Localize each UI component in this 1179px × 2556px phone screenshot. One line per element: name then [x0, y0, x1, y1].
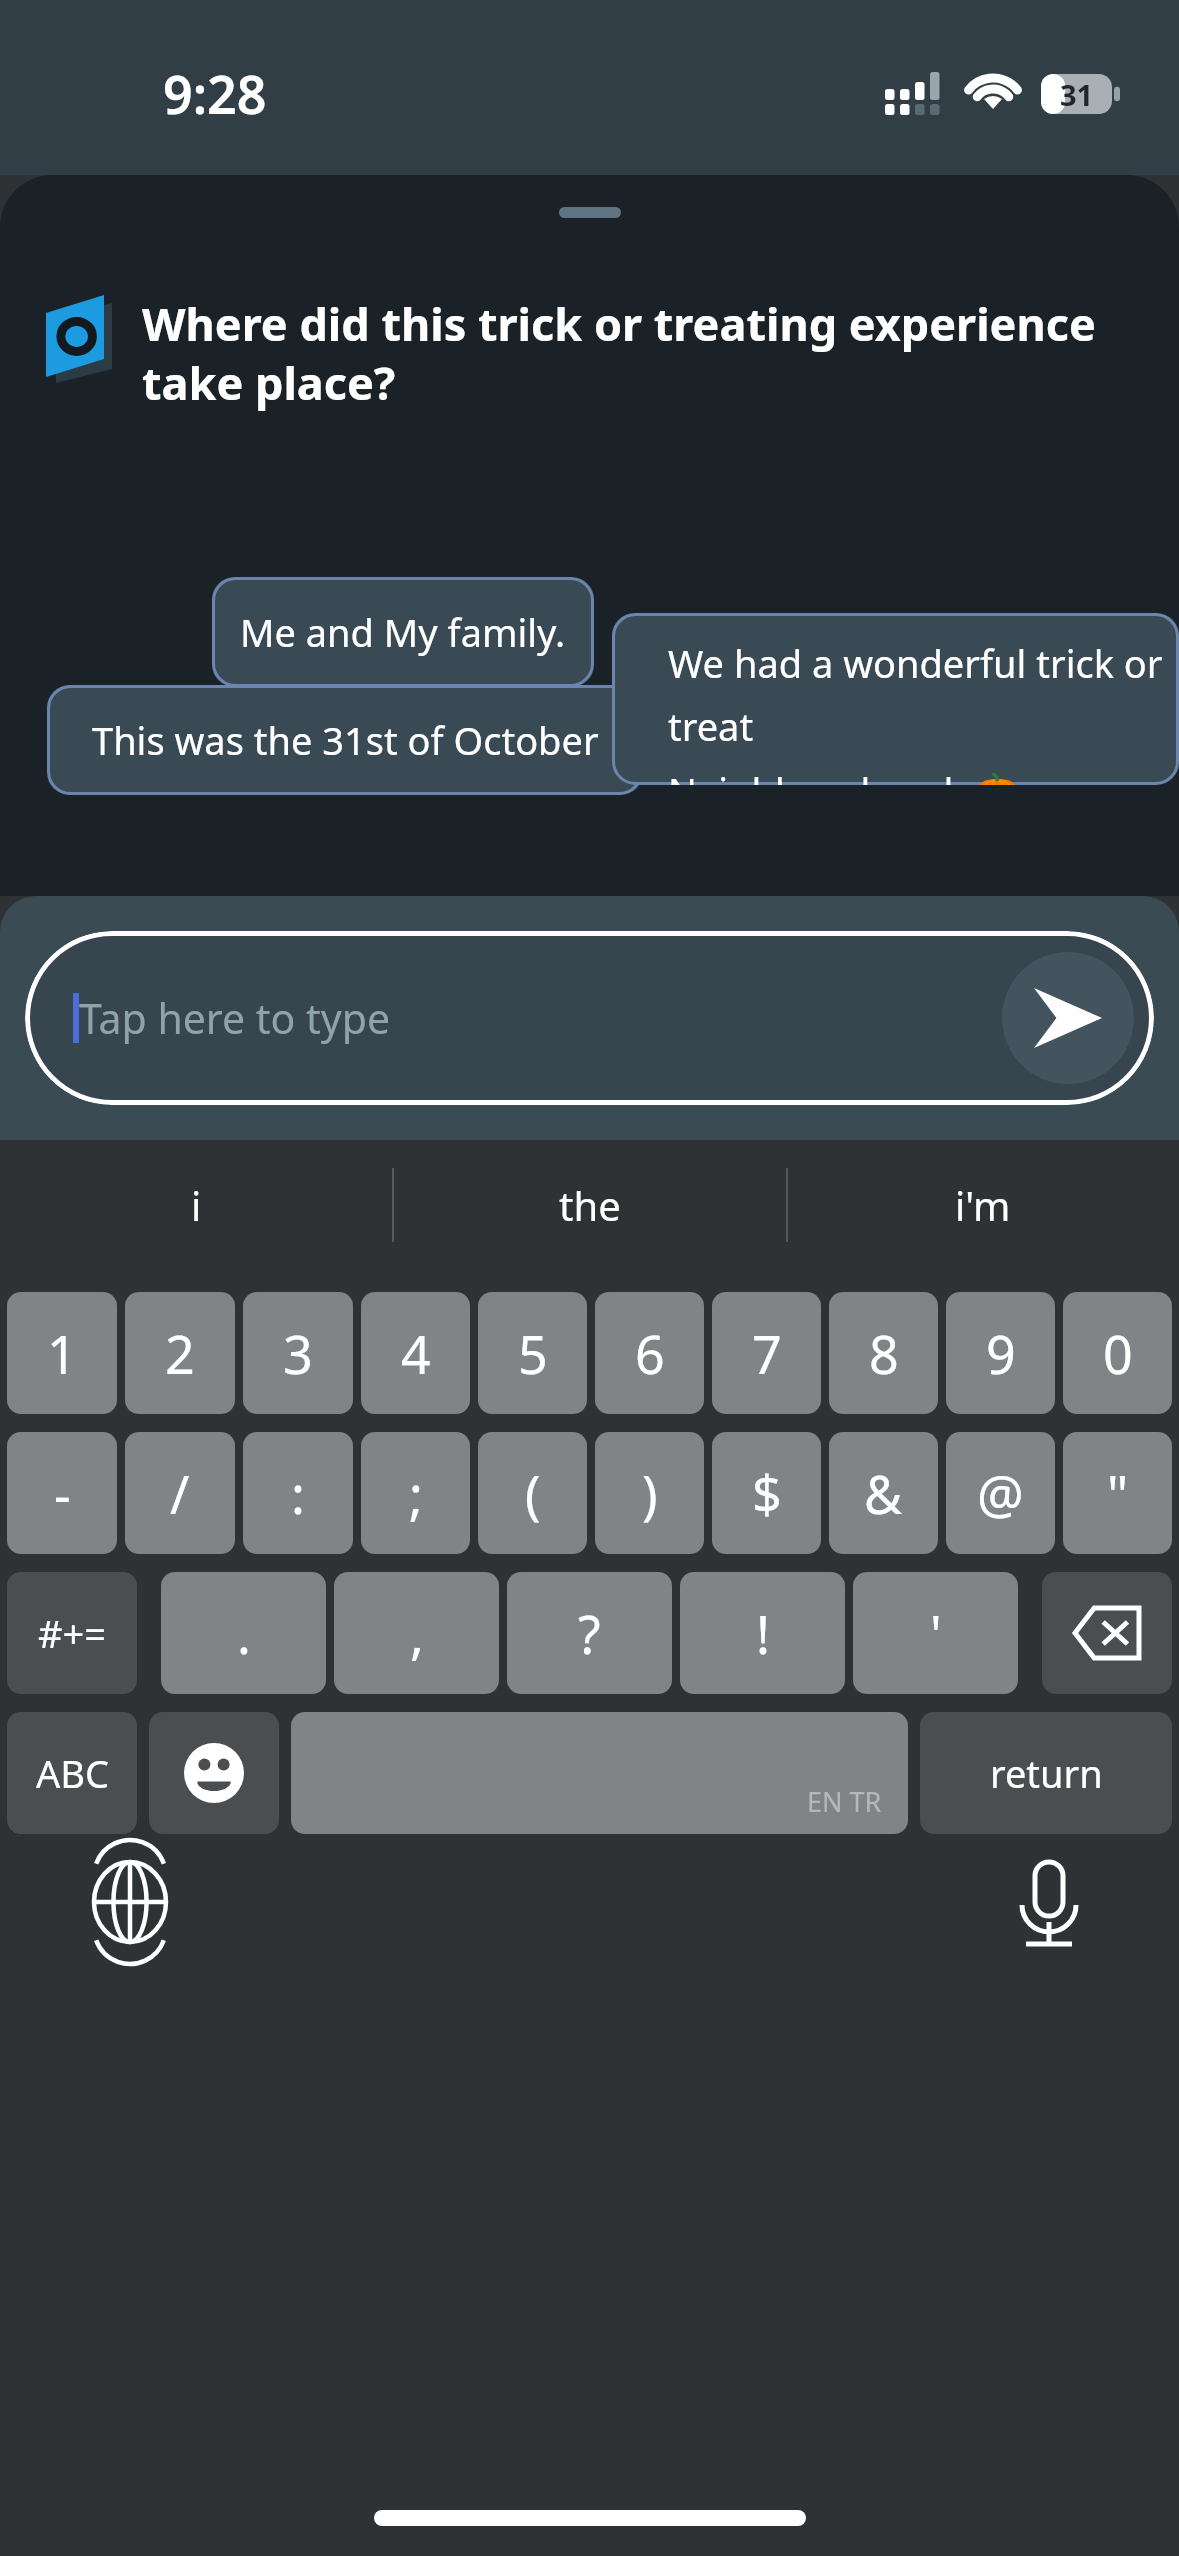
button[interactable]: #+= [7, 1572, 137, 1694]
staticText: : [291, 1458, 305, 1529]
staticText: $ [752, 1458, 782, 1529]
button[interactable]: 8 [829, 1292, 938, 1414]
staticText: ? [578, 1598, 601, 1669]
button[interactable]: , [334, 1572, 499, 1694]
button[interactable]: the [393, 1140, 786, 1270]
staticText: ! [756, 1598, 770, 1669]
button[interactable]: Backspace [1042, 1572, 1172, 1694]
staticText: Tap here to type [79, 990, 391, 1046]
button[interactable]: ? [507, 1572, 672, 1694]
button[interactable]: ABC [7, 1712, 137, 1834]
staticText: 7 [752, 1318, 782, 1389]
button[interactable]: 9 [946, 1292, 1055, 1414]
staticText: EN TR [807, 1783, 882, 1820]
staticText: 5 [518, 1318, 548, 1389]
staticText: 6 [635, 1318, 665, 1389]
staticText: 9 [986, 1318, 1016, 1389]
staticText: 31 [1060, 75, 1094, 114]
staticText: i [191, 1178, 202, 1232]
button[interactable]: 5 [478, 1292, 587, 1414]
staticText: return [990, 1747, 1103, 1799]
staticText: 2 [165, 1318, 195, 1389]
button[interactable]: EN TR [291, 1712, 908, 1834]
button[interactable]: Change language [88, 1860, 172, 1944]
button[interactable]: ! [680, 1572, 845, 1694]
button[interactable]: : [243, 1432, 353, 1554]
button[interactable]: " [1063, 1432, 1172, 1554]
staticText: ) [642, 1458, 658, 1529]
staticText: ABC [36, 1747, 109, 1799]
staticText: 1 [47, 1318, 77, 1389]
staticText: . [237, 1598, 251, 1669]
staticText: Where did this trick or treating experie… [142, 293, 1139, 413]
staticText: , [410, 1598, 424, 1669]
button[interactable]: ( [478, 1432, 587, 1554]
button[interactable]: 7 [712, 1292, 821, 1414]
button[interactable]: $ [712, 1432, 821, 1554]
button[interactable]: . [161, 1572, 326, 1694]
button[interactable]: Tap here to type [25, 931, 1154, 1105]
button[interactable]: ; [361, 1432, 470, 1554]
staticText: Me and My family. [240, 606, 566, 658]
staticText: - [54, 1458, 71, 1529]
staticText: 3 [283, 1318, 313, 1389]
button[interactable]: Send [1002, 952, 1134, 1084]
button[interactable]: Me and My family. [212, 577, 594, 687]
button[interactable]: Dictation [1007, 1860, 1091, 1944]
staticText: i'm [955, 1178, 1011, 1232]
staticText: ; [409, 1458, 423, 1529]
staticText: 0 [1103, 1318, 1133, 1389]
staticText: 8 [869, 1318, 899, 1389]
staticText: ' [930, 1598, 942, 1669]
staticText: the [559, 1178, 621, 1232]
button[interactable]: 1 [7, 1292, 117, 1414]
staticText: 4 [401, 1318, 431, 1389]
button[interactable]: This was the 31st of October [47, 685, 643, 795]
button[interactable]: ) [595, 1432, 704, 1554]
button[interactable]: return [920, 1712, 1172, 1834]
button[interactable]: @ [946, 1432, 1055, 1554]
button[interactable]: & [829, 1432, 938, 1554]
button[interactable]: 6 [595, 1292, 704, 1414]
staticText: We had a wonderful trick or treat Neighb… [668, 637, 1179, 785]
staticText: " [1107, 1458, 1129, 1529]
button[interactable]: Emoji [149, 1712, 279, 1834]
staticText: #+= [38, 1607, 107, 1659]
staticText: ( [525, 1458, 541, 1529]
button[interactable]: 4 [361, 1292, 470, 1414]
button[interactable]: / [125, 1432, 235, 1554]
staticText: 9:28 [163, 58, 267, 129]
button[interactable]: i [0, 1140, 393, 1270]
button[interactable]: ' [853, 1572, 1018, 1694]
button[interactable]: We had a wonderful trick or treat Neighb… [612, 613, 1179, 785]
button[interactable]: - [7, 1432, 117, 1554]
button[interactable]: i'm [786, 1140, 1179, 1270]
button[interactable]: 2 [125, 1292, 235, 1414]
staticText: / [170, 1458, 190, 1529]
button[interactable]: 3 [243, 1292, 353, 1414]
staticText: & [864, 1458, 903, 1529]
staticText: @ [977, 1458, 1024, 1529]
button[interactable]: 0 [1063, 1292, 1172, 1414]
staticText: This was the 31st of October [92, 714, 599, 766]
